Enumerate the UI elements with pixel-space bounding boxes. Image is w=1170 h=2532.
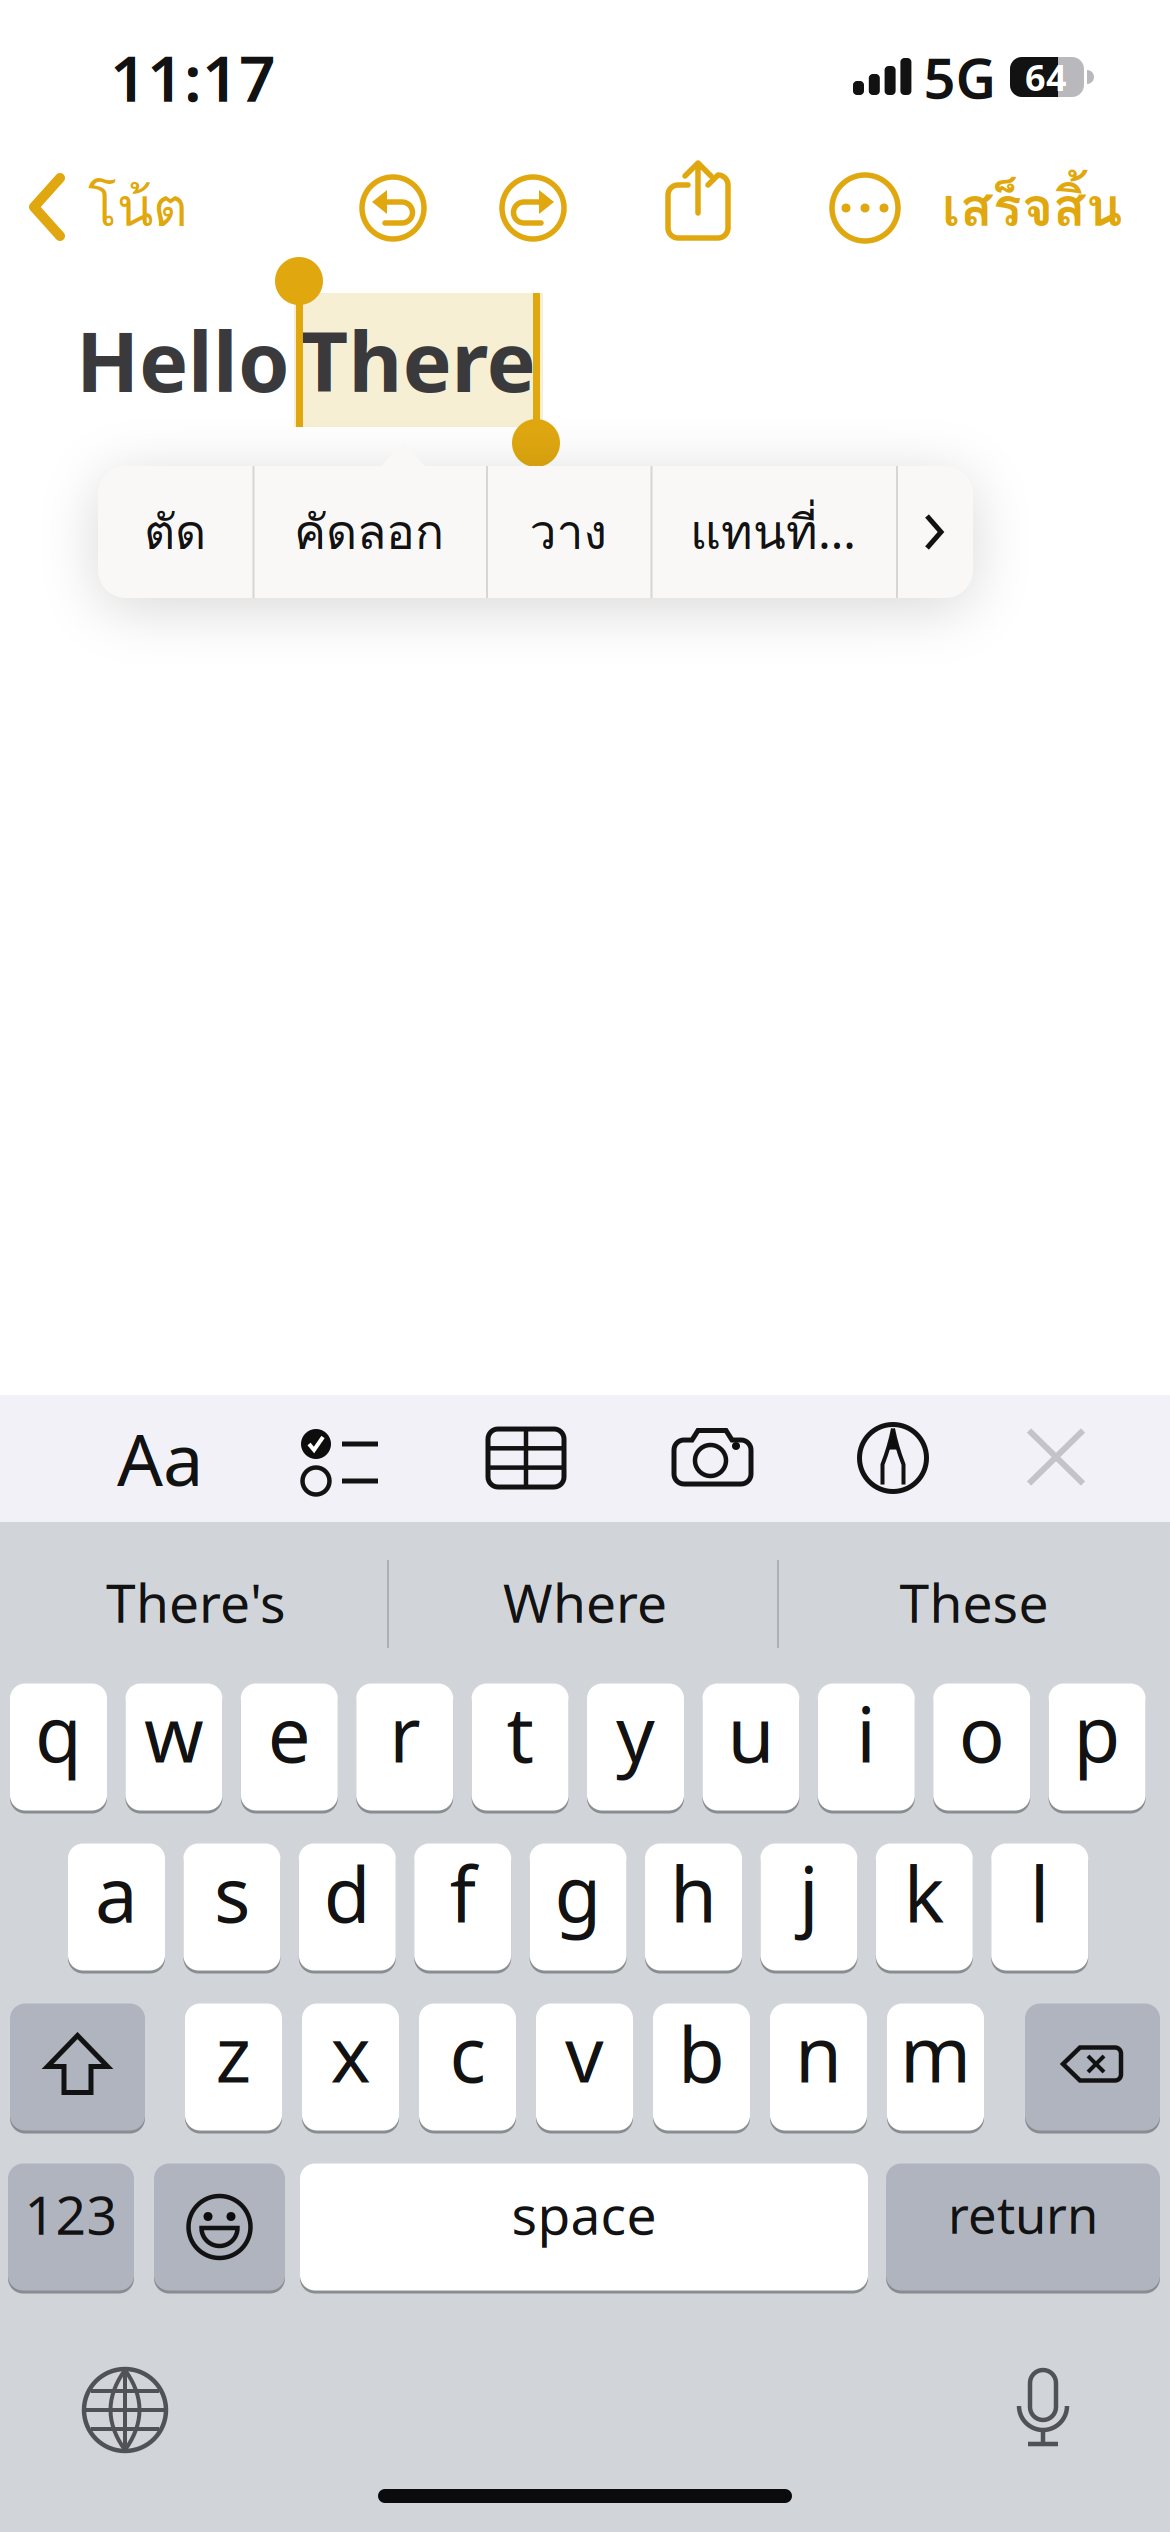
- staticText: d: [324, 1842, 371, 1943]
- staticText: z: [215, 2002, 251, 2103]
- staticText: m: [900, 2002, 971, 2103]
- button[interactable]: o: [933, 1682, 1030, 1812]
- staticText: โน้ต: [88, 166, 188, 248]
- staticText: a: [95, 1842, 138, 1943]
- button[interactable]: ตัด: [144, 466, 206, 598]
- button[interactable]: a: [68, 1842, 165, 1972]
- button[interactable]: z: [185, 2002, 282, 2132]
- staticText: 123: [24, 2179, 117, 2249]
- staticText: l: [1030, 1842, 1050, 1943]
- button[interactable]: x: [302, 2002, 399, 2132]
- staticText: space: [511, 2179, 656, 2249]
- staticText: u: [727, 1682, 774, 1783]
- button[interactable]: Dictate: [983, 2348, 1103, 2468]
- button[interactable]: c: [419, 2002, 516, 2132]
- staticText: f: [450, 1842, 476, 1943]
- staticText: แทนที่…: [690, 495, 856, 569]
- button[interactable]: t: [472, 1682, 569, 1812]
- staticText: 11:17: [110, 34, 276, 119]
- staticText: t: [507, 1682, 534, 1783]
- staticText: 64: [1025, 53, 1067, 101]
- button[interactable]: Redo: [502, 177, 564, 239]
- button[interactable]: Table: [456, 1403, 596, 1513]
- button[interactable]: คัดลอก: [294, 466, 444, 598]
- staticText: Where: [503, 1567, 667, 1637]
- button[interactable]: f: [414, 1842, 511, 1972]
- button[interactable]: Delete: [1025, 2002, 1160, 2132]
- button[interactable]: b: [653, 2002, 750, 2132]
- staticText: There's: [106, 1567, 286, 1637]
- staticText: วาง: [529, 495, 606, 569]
- button[interactable]: u: [702, 1682, 799, 1812]
- staticText: Hello: [76, 305, 290, 415]
- staticText: w: [144, 1682, 204, 1783]
- button[interactable]: Back to Notes: [28, 172, 188, 242]
- button[interactable]: Share: [668, 160, 728, 240]
- button[interactable]: l: [991, 1842, 1088, 1972]
- button[interactable]: Format: [100, 1403, 220, 1513]
- button[interactable]: Next keyboard: [65, 2350, 185, 2470]
- button[interactable]: เสร็จสิ้น: [942, 166, 1122, 248]
- staticText: y: [616, 1682, 655, 1783]
- button[interactable]: h: [645, 1842, 742, 1972]
- staticText: r: [389, 1682, 420, 1783]
- staticText: c: [449, 2002, 485, 2103]
- button[interactable]: วาง: [529, 466, 606, 598]
- button[interactable]: Undo: [362, 177, 424, 239]
- staticText: s: [214, 1842, 250, 1943]
- button[interactable]: y: [587, 1682, 684, 1812]
- button[interactable]: There's: [11, 1538, 381, 1666]
- button[interactable]: Shift: [10, 2002, 145, 2132]
- button[interactable]: return: [886, 2162, 1160, 2292]
- staticText: There: [300, 305, 535, 415]
- staticText: b: [678, 2002, 725, 2103]
- staticText: Aa: [117, 1410, 203, 1506]
- button[interactable]: These: [789, 1538, 1159, 1666]
- button[interactable]: j: [760, 1842, 857, 1972]
- staticText: n: [795, 2002, 842, 2103]
- button[interactable]: k: [876, 1842, 973, 1972]
- button[interactable]: Insert photo: [643, 1402, 783, 1512]
- button[interactable]: i: [818, 1682, 915, 1812]
- staticText: ตัด: [144, 495, 206, 569]
- button[interactable]: More: [832, 175, 898, 241]
- button[interactable]: w: [125, 1682, 222, 1812]
- button[interactable]: m: [887, 2002, 984, 2132]
- staticText: k: [904, 1842, 945, 1943]
- staticText: j: [799, 1842, 819, 1943]
- staticText: 5G: [923, 40, 996, 114]
- button[interactable]: v: [536, 2002, 633, 2132]
- button[interactable]: s: [183, 1842, 280, 1972]
- button[interactable]: d: [299, 1842, 396, 1972]
- button[interactable]: g: [530, 1842, 627, 1972]
- button[interactable]: Where: [400, 1538, 770, 1666]
- button[interactable]: n: [770, 2002, 867, 2132]
- staticText: v: [565, 2002, 604, 2103]
- button[interactable]: Markup: [823, 1403, 963, 1513]
- staticText: p: [1074, 1682, 1121, 1783]
- staticText: return: [948, 2180, 1098, 2248]
- staticText: h: [670, 1842, 717, 1943]
- staticText: q: [35, 1682, 82, 1783]
- button[interactable]: More menu actions: [896, 466, 972, 598]
- staticText: เสร็จสิ้น: [942, 166, 1122, 248]
- button[interactable]: Checklist: [270, 1403, 410, 1513]
- staticText: g: [555, 1842, 602, 1943]
- button[interactable]: Dismiss keyboard: [991, 1402, 1121, 1512]
- button[interactable]: 123: [8, 2162, 134, 2292]
- staticText: x: [330, 2002, 370, 2103]
- button[interactable]: แทนที่…: [690, 466, 856, 598]
- button[interactable]: p: [1049, 1682, 1146, 1812]
- staticText: e: [268, 1682, 311, 1783]
- button[interactable]: r: [356, 1682, 453, 1812]
- button[interactable]: e: [241, 1682, 338, 1812]
- staticText: o: [959, 1682, 1005, 1783]
- button[interactable]: q: [10, 1682, 107, 1812]
- staticText: คัดลอก: [294, 495, 444, 569]
- staticText: These: [899, 1567, 1048, 1637]
- button[interactable]: Emoji: [154, 2162, 285, 2292]
- button[interactable]: space: [300, 2162, 868, 2292]
- staticText: i: [856, 1682, 876, 1783]
